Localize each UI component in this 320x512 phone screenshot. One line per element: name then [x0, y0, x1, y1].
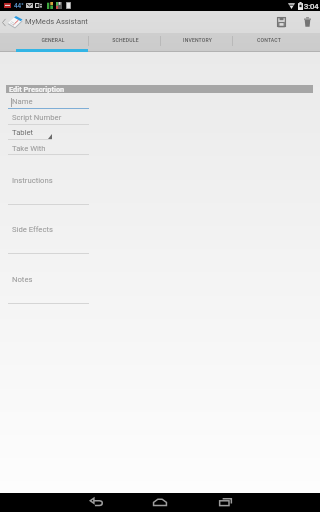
- button[interactable]: Name: [12, 97, 33, 106]
- button[interactable]: SCHEDULE: [89, 33, 161, 52]
- button[interactable]: Take With: [12, 144, 46, 153]
- staticText: 3:04: [304, 2, 319, 11]
- staticText: Notes: [12, 275, 33, 284]
- staticText: SCHEDULE: [112, 37, 139, 43]
- button[interactable]: Instructions: [12, 176, 53, 185]
- button[interactable]: MyMeds Assistant: [0, 11, 90, 33]
- staticText: Script Number: [12, 113, 62, 122]
- staticText: GENERAL: [41, 37, 65, 43]
- staticText: Edit Prescription: [9, 85, 65, 93]
- button[interactable]: Recents: [203, 492, 247, 511]
- button[interactable]: Home: [138, 492, 182, 511]
- button[interactable]: Save: [266, 11, 296, 33]
- button[interactable]: INVENTORY: [161, 33, 233, 52]
- staticText: MyMeds Assistant: [25, 17, 88, 26]
- staticText: 44°: [14, 2, 24, 10]
- staticText: Side Effects: [12, 225, 53, 234]
- button[interactable]: Script Number: [12, 113, 62, 122]
- staticText: CONTACT: [257, 37, 281, 43]
- button[interactable]: Side Effects: [12, 225, 53, 234]
- staticText: Name: [12, 97, 33, 106]
- button[interactable]: Back: [74, 492, 118, 511]
- button[interactable]: Tablet: [12, 128, 34, 137]
- staticText: INVENTORY: [183, 37, 212, 43]
- staticText: Instructions: [12, 176, 53, 185]
- button[interactable]: GENERAL: [16, 33, 89, 52]
- staticText: Tablet: [12, 128, 34, 137]
- staticText: Take With: [12, 144, 46, 153]
- button[interactable]: Notes: [12, 275, 33, 284]
- button[interactable]: Delete: [294, 11, 320, 33]
- button[interactable]: CONTACT: [233, 33, 305, 52]
- button[interactable]: Edit Prescription: [6, 85, 313, 93]
